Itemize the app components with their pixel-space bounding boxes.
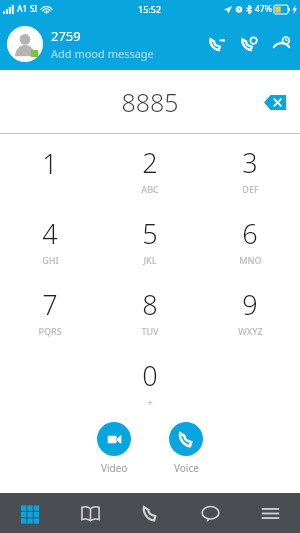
staticText: 3 (242, 144, 258, 181)
staticText: TUV (141, 325, 159, 337)
button[interactable]: Recent calls (269, 32, 293, 56)
button[interactable]: Chats (180, 493, 240, 533)
button[interactable]: 7 (0, 276, 100, 347)
staticText: 5 (142, 215, 158, 252)
button[interactable]: 3 (200, 134, 300, 205)
staticText: GHI (42, 254, 59, 266)
staticText: + (147, 396, 153, 408)
staticText: Add mood message (51, 46, 154, 61)
staticText: 7 (42, 286, 58, 323)
button[interactable]: Voice (163, 422, 209, 475)
button[interactable]: 1 (0, 134, 100, 205)
button[interactable]: 5 (100, 205, 200, 276)
button[interactable]: 2 (100, 134, 200, 205)
staticText: Voice (174, 461, 199, 475)
button[interactable]: Calls (120, 493, 180, 533)
staticText: MNO (239, 254, 262, 266)
staticText: 8885 (121, 85, 179, 119)
button[interactable]: Call with message (237, 32, 261, 56)
staticText: 6 (242, 215, 258, 252)
staticText: 2 (142, 144, 158, 181)
staticText: 15:52 (138, 3, 162, 15)
button[interactable] (7, 26, 43, 62)
button[interactable]: Backspace (258, 85, 292, 119)
button[interactable]: Menu (240, 493, 300, 533)
staticText: ABC (141, 183, 159, 195)
staticText: 47% (255, 3, 272, 15)
button[interactable]: 9 (200, 276, 300, 347)
button[interactable]: 8 (100, 276, 200, 347)
staticText: 0 (142, 357, 158, 394)
staticText: 2759 (51, 27, 81, 45)
staticText: 8 (142, 286, 158, 323)
staticText: 9 (242, 286, 258, 323)
staticText: PQRS (38, 325, 62, 337)
button[interactable]: Add contact (205, 32, 229, 56)
staticText: WXYZ (238, 325, 263, 337)
staticText: 1 (42, 145, 58, 182)
staticText: DEF (242, 183, 259, 195)
staticText: A1 SI (17, 3, 38, 15)
staticText: Video (101, 461, 128, 475)
button[interactable]: 0 (100, 347, 200, 418)
staticText: JKL (143, 254, 157, 266)
staticText: 4 (42, 215, 58, 252)
button[interactable]: Video (91, 422, 137, 475)
button[interactable]: Dialpad (0, 493, 60, 533)
button[interactable]: 6 (200, 205, 300, 276)
button[interactable]: Contacts (60, 493, 120, 533)
button[interactable]: 4 (0, 205, 100, 276)
